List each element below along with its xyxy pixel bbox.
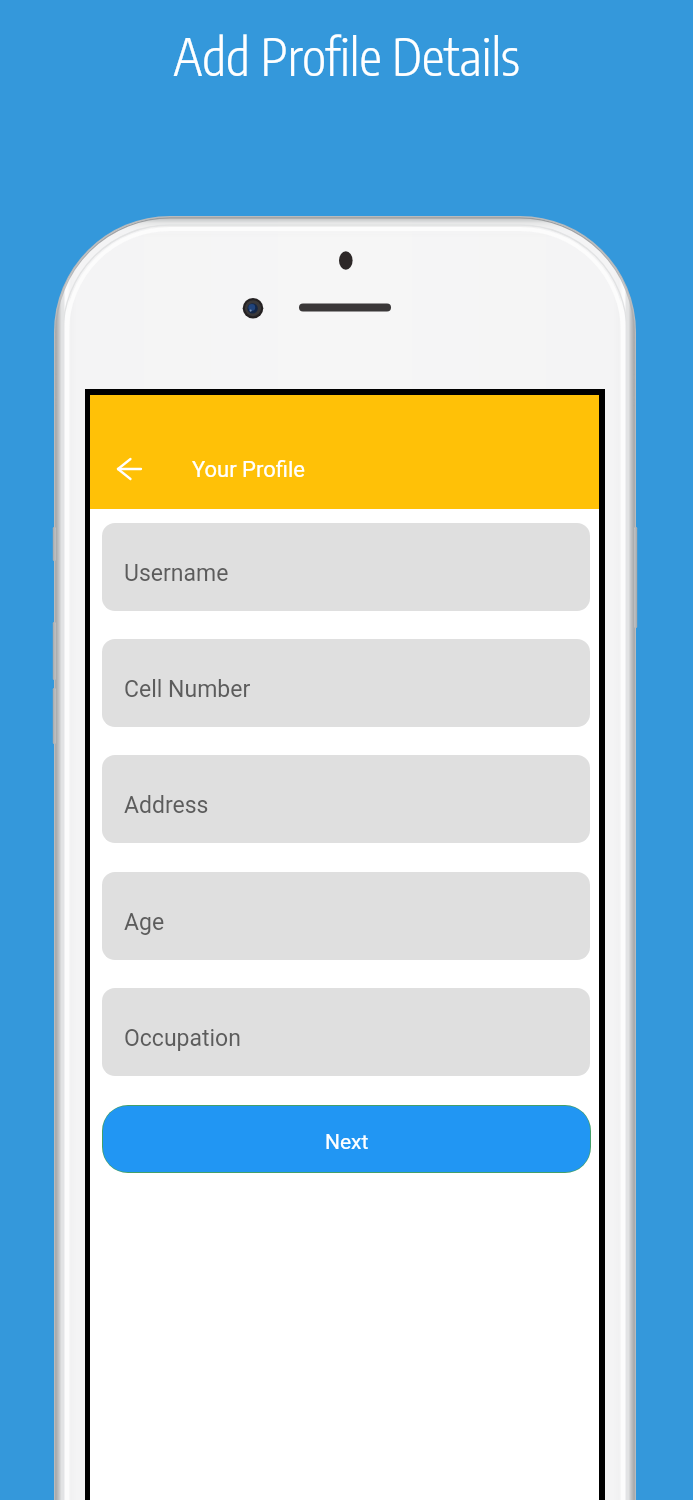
button[interactable]: Username <box>102 523 590 611</box>
staticText: Age <box>124 909 165 936</box>
staticText: Next <box>325 1130 369 1155</box>
staticText: Username <box>124 560 229 587</box>
staticText: Cell Number <box>124 676 251 703</box>
button[interactable]: Occupation <box>102 988 590 1076</box>
button[interactable]: Next <box>103 1106 590 1172</box>
button[interactable]: Address <box>102 755 590 843</box>
staticText: Address <box>124 792 209 819</box>
staticText: Add Profile Details <box>0 24 693 87</box>
button[interactable]: Cell Number <box>102 639 590 727</box>
button[interactable]: Age <box>102 872 590 960</box>
staticText: Occupation <box>124 1025 241 1052</box>
button[interactable]: Back <box>107 447 151 491</box>
staticText: Your Profile <box>192 457 305 483</box>
